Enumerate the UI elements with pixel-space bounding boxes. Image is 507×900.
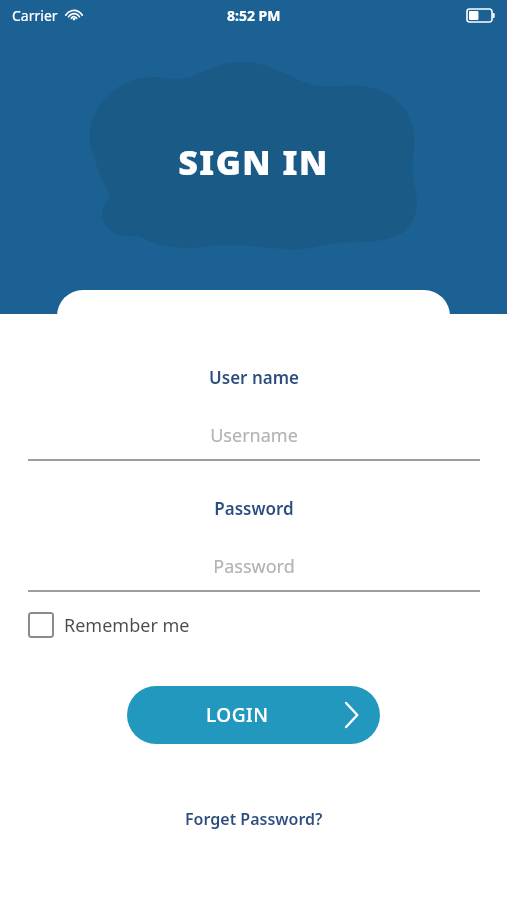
staticText: Remember me xyxy=(64,613,190,638)
staticText: 8:52 PM xyxy=(227,6,281,25)
staticText: Password xyxy=(28,554,480,579)
staticText: LOGIN xyxy=(206,702,269,728)
staticText: Password xyxy=(28,497,480,520)
button[interactable]: Remember me xyxy=(28,609,190,641)
staticText: Carrier xyxy=(12,6,58,25)
staticText: Forget Password? xyxy=(185,808,323,830)
staticText: SIGN IN xyxy=(178,139,329,185)
button[interactable]: LOGIN xyxy=(127,686,380,744)
staticText: Username xyxy=(28,423,480,448)
staticText: User name xyxy=(28,366,480,389)
button[interactable]: Forget Password? xyxy=(173,803,335,835)
button[interactable]: Username xyxy=(28,422,480,448)
button[interactable]: Password xyxy=(28,553,480,579)
